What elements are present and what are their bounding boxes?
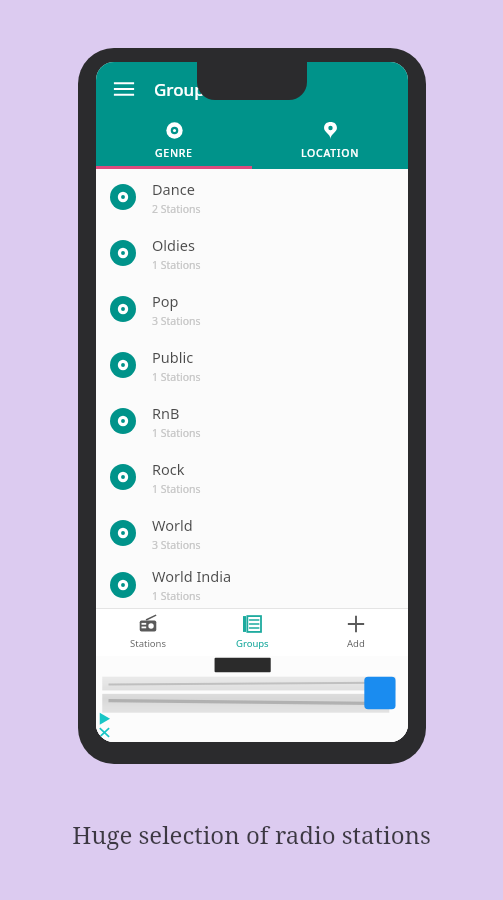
staticText: Groups: [236, 637, 269, 650]
button[interactable]: Oldies: [96, 225, 408, 281]
staticText: Groups: [154, 78, 214, 101]
staticText: 3 Stations: [152, 538, 201, 552]
button[interactable]: RnB: [96, 393, 408, 449]
staticText: Rock: [152, 459, 185, 479]
staticText: GENRE: [155, 146, 193, 160]
button[interactable]: Open navigation menu: [104, 69, 144, 109]
staticText: Stations: [130, 637, 167, 650]
staticText: 1 Stations: [152, 589, 201, 603]
staticText: RnB: [152, 403, 180, 423]
button[interactable]: Stations: [96, 608, 200, 656]
button[interactable]: Public: [96, 337, 408, 393]
staticText: 1 Stations: [152, 426, 201, 440]
button[interactable]: Add: [304, 608, 408, 656]
staticText: World: [152, 515, 193, 535]
button[interactable]: Groups: [200, 608, 304, 656]
staticText: 1 Stations: [152, 258, 201, 272]
staticText: Huge selection of radio stations: [0, 818, 503, 851]
staticText: 1 Stations: [152, 482, 201, 496]
staticText: LOCATION: [301, 146, 360, 160]
staticText: 3 Stations: [152, 314, 201, 328]
staticText: Public: [152, 347, 194, 367]
staticText: Add: [347, 637, 365, 650]
button[interactable]: Rock: [96, 449, 408, 505]
staticText: World India: [152, 566, 232, 586]
button[interactable]: Dance: [96, 169, 408, 225]
button[interactable]: GENRE: [96, 116, 252, 166]
button[interactable]: World India: [96, 561, 408, 608]
button[interactable]: LOCATION: [252, 116, 408, 166]
staticText: Dance: [152, 179, 195, 199]
staticText: 1 Stations: [152, 370, 201, 384]
button[interactable]: Pop: [96, 281, 408, 337]
staticText: Oldies: [152, 235, 195, 255]
button[interactable]: World: [96, 505, 408, 561]
staticText: Pop: [152, 291, 179, 311]
staticText: 2 Stations: [152, 202, 201, 216]
